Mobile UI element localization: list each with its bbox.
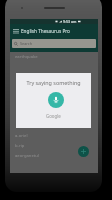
staticText: 9:53 am [63,19,77,24]
button[interactable]: Microphone [48,92,64,108]
button[interactable]: Open navigation menu [10,24,21,38]
button[interactable]: b-rip [10,141,98,151]
staticText: Google [46,113,61,119]
staticText: Try saying something [26,79,81,86]
staticText: English Thesaurus Pro [21,28,70,34]
staticText: b-rip [15,143,25,149]
button[interactable]: Search [12,39,96,48]
staticText: Search [20,41,33,46]
button[interactable]: earthquake [10,52,98,62]
staticText: a-oriel [15,133,28,139]
button[interactable]: aeorganetul [10,151,98,161]
button[interactable]: Add word [78,146,89,157]
staticText: aeorganetul [15,153,39,159]
button[interactable]: a-oriel [10,131,98,141]
staticText: earthquake [15,54,38,60]
